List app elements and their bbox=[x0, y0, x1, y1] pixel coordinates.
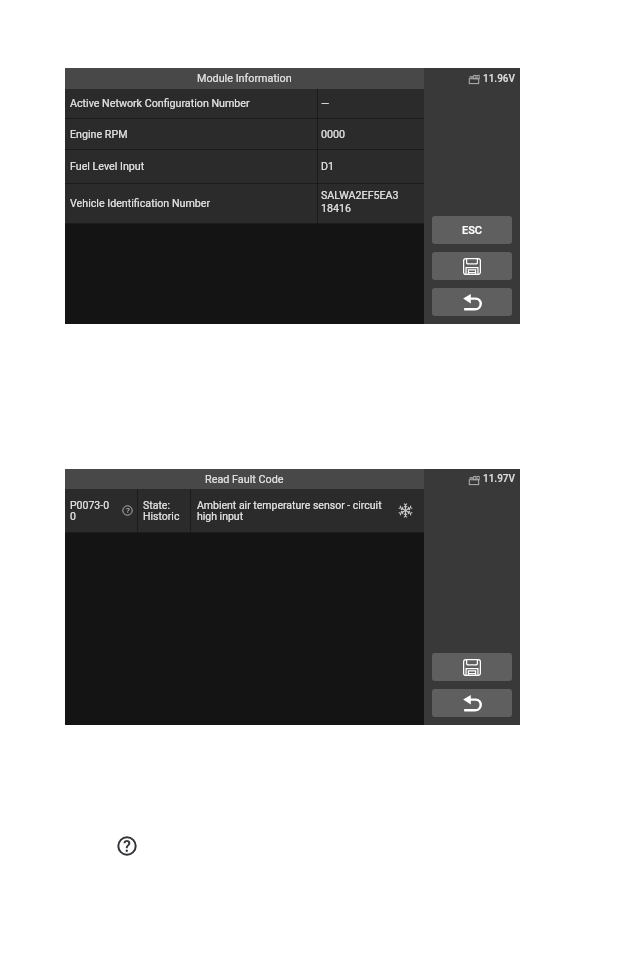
staticText: Module Information bbox=[197, 72, 292, 85]
staticText: ? bbox=[123, 837, 131, 856]
button[interactable]: Back bbox=[432, 288, 512, 316]
staticText: — bbox=[321, 97, 330, 110]
staticText: 0000 bbox=[321, 128, 346, 141]
button[interactable]: Back bbox=[432, 689, 512, 717]
staticText: 11.97V bbox=[483, 473, 516, 485]
staticText: Fuel Level Input bbox=[70, 160, 145, 173]
button[interactable]: Vehicle Identification Number bbox=[65, 184, 424, 223]
button[interactable]: Fault code help bbox=[122, 505, 133, 516]
staticText: Active Network Configuration Number bbox=[70, 97, 250, 110]
staticText: D1 bbox=[321, 160, 335, 173]
button[interactable]: Active Network Configuration Number bbox=[65, 89, 424, 118]
staticText: Vehicle Identification Number bbox=[70, 197, 211, 210]
button[interactable]: Engine RPM bbox=[65, 119, 424, 149]
staticText: ? bbox=[126, 506, 130, 515]
staticText: P0073-00 bbox=[70, 499, 110, 522]
button[interactable]: P0073-00 bbox=[65, 489, 424, 532]
button[interactable]: Save bbox=[432, 653, 512, 681]
staticText: 11.96V bbox=[483, 73, 516, 85]
button[interactable]: Help bbox=[117, 836, 137, 856]
staticText: Read Fault Code bbox=[205, 473, 284, 486]
staticText: Ambient air temperature sensor - circuit… bbox=[197, 499, 382, 522]
button[interactable]: ESC bbox=[432, 216, 512, 244]
staticText: State: Historic bbox=[143, 499, 180, 522]
staticText: ESC bbox=[462, 224, 483, 237]
button[interactable]: Save bbox=[432, 252, 512, 280]
button[interactable]: Fuel Level Input bbox=[65, 150, 424, 183]
staticText: SALWA2EF5EA3 18416 bbox=[321, 189, 399, 215]
staticText: Engine RPM bbox=[70, 128, 128, 141]
